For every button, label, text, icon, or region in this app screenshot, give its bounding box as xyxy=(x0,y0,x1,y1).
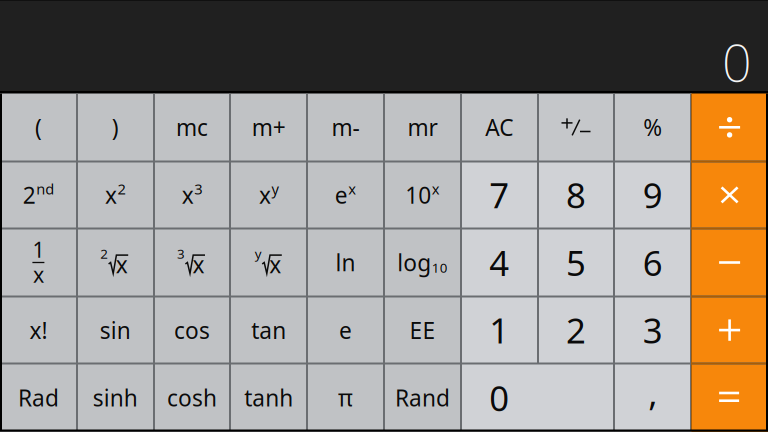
staticText: m- xyxy=(332,112,360,142)
staticText: ) xyxy=(112,112,119,142)
staticText: % xyxy=(643,112,662,142)
staticText: 0 xyxy=(489,375,509,421)
staticText: , xyxy=(648,370,657,416)
staticText: x xyxy=(33,260,44,289)
button[interactable]: 8 xyxy=(538,161,614,229)
button[interactable]: ( xyxy=(0,93,77,161)
button[interactable]: 9 xyxy=(614,161,691,229)
staticText: m+ xyxy=(252,112,286,142)
button[interactable]: 2 xyxy=(77,229,154,296)
staticText: tan xyxy=(251,315,286,345)
staticText: 2 xyxy=(100,245,108,262)
staticText: x xyxy=(116,249,128,279)
staticText: 2 xyxy=(566,307,586,353)
button[interactable]: e xyxy=(307,296,384,364)
button[interactable]: log xyxy=(384,229,461,296)
staticText: 7 xyxy=(489,172,509,218)
button[interactable]: ) xyxy=(77,93,154,161)
staticText: mr xyxy=(407,112,437,142)
staticText: x xyxy=(348,179,356,199)
staticText: 6 xyxy=(643,239,663,285)
button[interactable]: m- xyxy=(307,93,384,161)
staticText: cosh xyxy=(167,383,217,413)
staticText: Rand xyxy=(395,383,450,413)
staticText: e xyxy=(335,180,348,210)
staticText: 4 xyxy=(489,239,509,285)
button[interactable]: 4 xyxy=(461,229,538,296)
button[interactable]: AC xyxy=(461,93,538,161)
button[interactable]: cosh xyxy=(154,364,230,431)
button[interactable]: 10 xyxy=(384,161,461,229)
button[interactable]: m+ xyxy=(230,93,307,161)
staticText: x! xyxy=(29,315,47,345)
staticText: y xyxy=(255,245,262,262)
button[interactable]: cos xyxy=(154,296,230,364)
button[interactable]: tanh xyxy=(230,364,307,431)
staticText: ( xyxy=(35,112,42,142)
button[interactable]: 2 xyxy=(0,161,77,229)
button[interactable]: 1 xyxy=(0,229,77,296)
staticText: x xyxy=(269,249,281,279)
staticText: e xyxy=(339,315,352,345)
button[interactable] xyxy=(691,161,768,229)
staticText: 8 xyxy=(566,172,586,218)
button[interactable]: 3 xyxy=(614,296,691,364)
button[interactable]: π xyxy=(307,364,384,431)
button[interactable]: Rand xyxy=(384,364,461,431)
staticText: 10 xyxy=(432,259,448,276)
button[interactable] xyxy=(691,296,768,364)
staticText: 3 xyxy=(643,307,663,353)
button[interactable]: x xyxy=(77,161,154,229)
staticText: EE xyxy=(409,315,435,345)
button[interactable]: Rad xyxy=(0,364,77,431)
button[interactable]: x xyxy=(154,161,230,229)
staticText: 1 xyxy=(489,307,509,353)
button[interactable]: tan xyxy=(230,296,307,364)
staticText: 10 xyxy=(405,180,431,210)
staticText: sin xyxy=(100,315,131,345)
button[interactable]: 7 xyxy=(461,161,538,229)
button[interactable] xyxy=(691,93,768,161)
staticText: π xyxy=(338,383,353,413)
button[interactable]: e xyxy=(307,161,384,229)
staticText: 2 xyxy=(117,179,125,199)
staticText: mc xyxy=(176,112,208,142)
staticText: cos xyxy=(174,315,210,345)
staticText: x xyxy=(259,180,271,210)
button[interactable]: , xyxy=(614,364,691,431)
staticText: nd xyxy=(36,179,54,199)
staticText: sinh xyxy=(93,383,138,413)
staticText: tanh xyxy=(244,383,293,413)
button[interactable]: ln xyxy=(307,229,384,296)
button[interactable]: 1 xyxy=(461,296,538,364)
staticText: 0 xyxy=(722,27,752,96)
button[interactable]: y xyxy=(230,229,307,296)
staticText: 3 xyxy=(194,179,202,199)
button[interactable]: sin xyxy=(77,296,154,364)
button[interactable] xyxy=(691,364,768,431)
staticText: AC xyxy=(485,112,513,142)
staticText: x xyxy=(182,180,194,210)
button[interactable]: 5 xyxy=(538,229,614,296)
button[interactable]: EE xyxy=(384,296,461,364)
staticText: log xyxy=(397,247,431,277)
staticText: x xyxy=(432,179,440,199)
button[interactable] xyxy=(538,93,614,161)
staticText: Rad xyxy=(18,383,59,413)
button[interactable]: sinh xyxy=(77,364,154,431)
staticText: x xyxy=(105,180,117,210)
staticText: x xyxy=(192,249,204,279)
button[interactable]: mc xyxy=(154,93,230,161)
button[interactable]: 2 xyxy=(538,296,614,364)
button[interactable]: x xyxy=(230,161,307,229)
staticText: 3 xyxy=(177,245,185,262)
button[interactable]: 6 xyxy=(614,229,691,296)
button[interactable]: % xyxy=(614,93,691,161)
button[interactable]: 0 xyxy=(461,364,614,431)
button[interactable]: 3 xyxy=(154,229,230,296)
button[interactable]: x! xyxy=(0,296,77,364)
button[interactable]: mr xyxy=(384,93,461,161)
button[interactable] xyxy=(691,229,768,296)
staticText: 9 xyxy=(643,172,663,218)
staticText: ln xyxy=(336,247,356,277)
